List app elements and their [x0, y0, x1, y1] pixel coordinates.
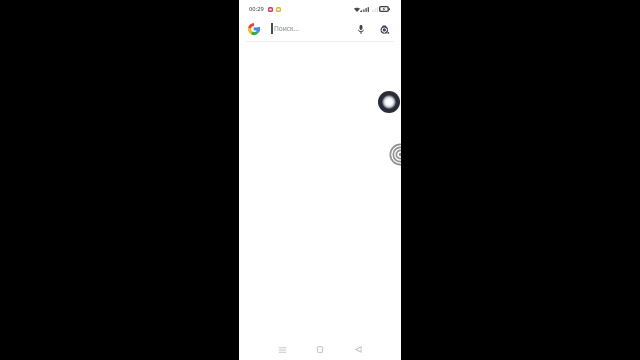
button[interactable]: Google Lens [375, 20, 393, 38]
button[interactable]: Поиск... [260, 17, 352, 40]
staticText: Поиск... [274, 24, 299, 33]
button[interactable]: Back [348, 339, 368, 360]
staticText: 00:29 [249, 5, 264, 13]
button[interactable]: Voice search [352, 20, 370, 38]
button[interactable]: Recent apps [272, 339, 292, 360]
button[interactable]: Home [310, 339, 330, 360]
button[interactable]: Google [248, 23, 260, 35]
